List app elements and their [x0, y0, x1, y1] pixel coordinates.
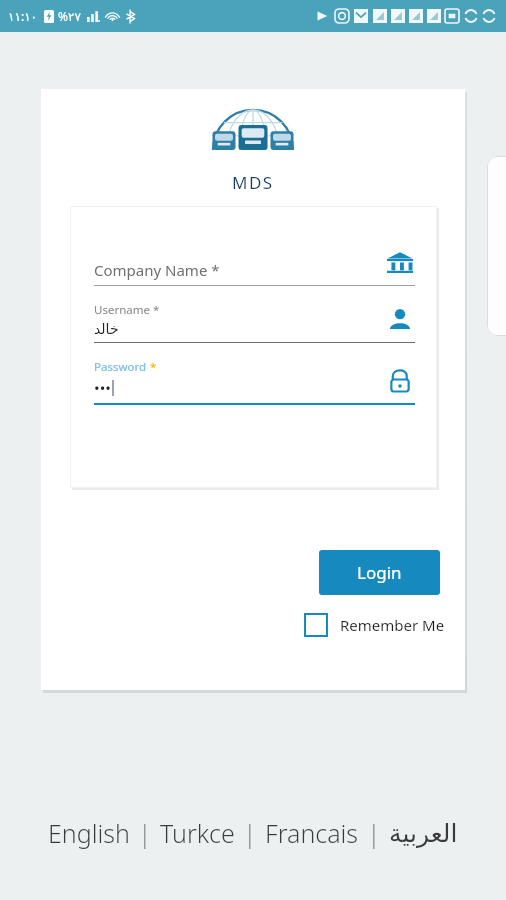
staticText: |	[243, 816, 257, 850]
staticText: ١١:١٠	[8, 8, 38, 24]
staticText: Francais	[265, 816, 359, 850]
staticText: |	[138, 816, 152, 850]
button[interactable]: العربية	[385, 817, 462, 850]
staticText: English	[48, 816, 130, 850]
other: Username	[385, 304, 415, 334]
button[interactable]: Remember Me	[304, 613, 445, 637]
other: Company	[385, 247, 415, 277]
button[interactable]: Turkce	[156, 814, 239, 852]
staticText: Username *	[94, 302, 160, 318]
button[interactable]: Francais	[261, 814, 363, 852]
button[interactable]: Username *	[94, 302, 415, 343]
button[interactable]: Company Name *	[94, 234, 415, 286]
staticText: العربية	[389, 819, 458, 848]
staticText: MDS	[232, 171, 274, 194]
button[interactable]: English	[44, 814, 134, 852]
staticText: |	[367, 816, 381, 850]
staticText: •••	[94, 378, 111, 398]
other: Password	[385, 365, 415, 395]
button[interactable]: Login	[319, 550, 440, 595]
staticText: Login	[357, 561, 402, 584]
staticText: Company Name *	[94, 260, 220, 280]
staticText: Remember Me	[340, 615, 445, 635]
staticText: Password	[94, 359, 150, 375]
button[interactable]: Password	[94, 359, 415, 405]
staticText: Turkce	[160, 816, 235, 850]
staticText: خالد	[94, 321, 119, 337]
staticText: %٢٧	[58, 8, 81, 24]
staticText: *	[150, 359, 157, 375]
